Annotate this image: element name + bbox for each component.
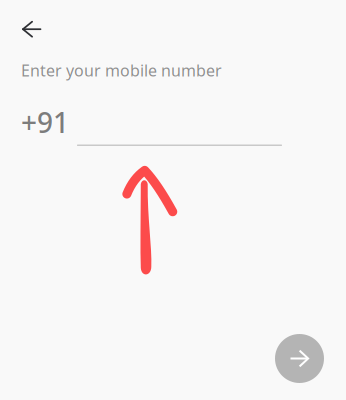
staticText: Enter your mobile number [21,60,222,81]
button[interactable]: Continue [275,334,324,383]
button[interactable]: Back [11,9,51,49]
staticText: +91 [21,104,69,141]
button[interactable]: Mobile number [77,116,282,146]
